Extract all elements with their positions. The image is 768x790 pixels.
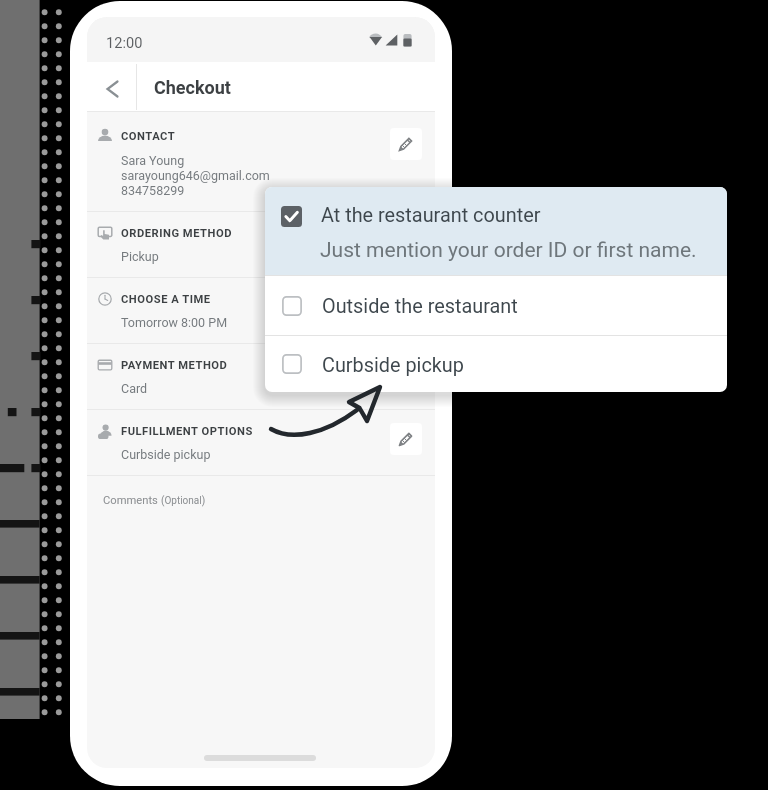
staticText: Checkout (154, 77, 231, 98)
staticText: At the restaurant counter (321, 204, 541, 227)
button[interactable]: CHOOSE A TIME (87, 278, 435, 344)
staticText: (Optional) (161, 495, 206, 507)
staticText: 12:00 (106, 34, 143, 51)
button[interactable]: At the restaurant counter (265, 187, 727, 275)
staticText: PAYMENT METHOD (121, 359, 228, 372)
button[interactable]: CONTACT (87, 112, 435, 212)
button[interactable]: Curbside pickup (265, 336, 727, 392)
button[interactable]: ORDERING METHOD (87, 212, 435, 278)
staticText: ORDERING METHOD (121, 227, 232, 240)
staticText: Curbside pickup (121, 447, 211, 462)
button[interactable]: Comments (87, 476, 435, 507)
staticText: Outside the restaurant (322, 295, 518, 318)
button[interactable]: Outside the restaurant (265, 276, 727, 335)
button[interactable]: PAYMENT METHOD (87, 344, 435, 410)
staticText: 834758299 (121, 183, 185, 198)
staticText: CONTACT (121, 130, 176, 143)
staticText: Just mention your order ID or first name… (320, 238, 697, 263)
staticText: Card (121, 381, 148, 396)
button[interactable]: Edit (390, 128, 422, 160)
staticText: FULFILLMENT OPTIONS (121, 425, 253, 438)
button[interactable]: Back (87, 62, 136, 112)
staticText: Comments (103, 494, 158, 507)
staticText: sarayoung646@gmail.com (121, 168, 270, 183)
staticText: Tomorrow 8:00 PM (121, 315, 228, 330)
staticText: Pickup (121, 249, 159, 264)
staticText: CHOOSE A TIME (121, 293, 211, 306)
staticText: Curbside pickup (322, 354, 464, 377)
button[interactable]: Edit (390, 423, 422, 455)
button[interactable]: FULFILLMENT OPTIONS (87, 410, 435, 476)
staticText: Sara Young (121, 153, 185, 168)
